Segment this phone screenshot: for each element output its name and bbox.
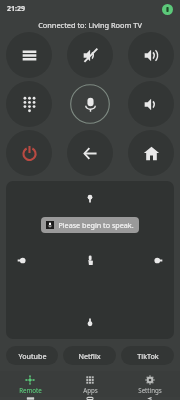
staticText: Youtube [18,351,47,361]
button[interactable]: Home [128,130,174,176]
staticText: Please begin to speak. [58,220,134,230]
staticText: Settings [138,386,162,394]
button[interactable]: Settings [120,371,180,397]
staticText: TikTok [137,351,159,361]
button[interactable]: Touch pad [6,181,174,339]
staticText: Apps [83,386,98,394]
button[interactable]: Back [67,130,113,176]
button[interactable]: Volume up [128,32,174,78]
button[interactable]: Keypad [6,81,52,127]
staticText: Remote [19,386,42,394]
button[interactable]: Remote [0,371,60,397]
button[interactable]: Mute [67,32,113,78]
button[interactable]: Power [6,130,52,176]
staticText: Connected to: Living Room TV [38,20,142,30]
button[interactable]: Voice search [67,81,113,127]
staticText: Netflix [78,351,101,361]
button[interactable]: Youtube [6,346,58,365]
button[interactable]: Menu [6,32,52,78]
staticText: 21:29 [7,4,25,14]
button[interactable]: Volume down [128,81,174,127]
button[interactable]: Netflix [63,346,116,365]
button[interactable]: TikTok [121,346,174,365]
button[interactable]: Apps [60,371,120,397]
